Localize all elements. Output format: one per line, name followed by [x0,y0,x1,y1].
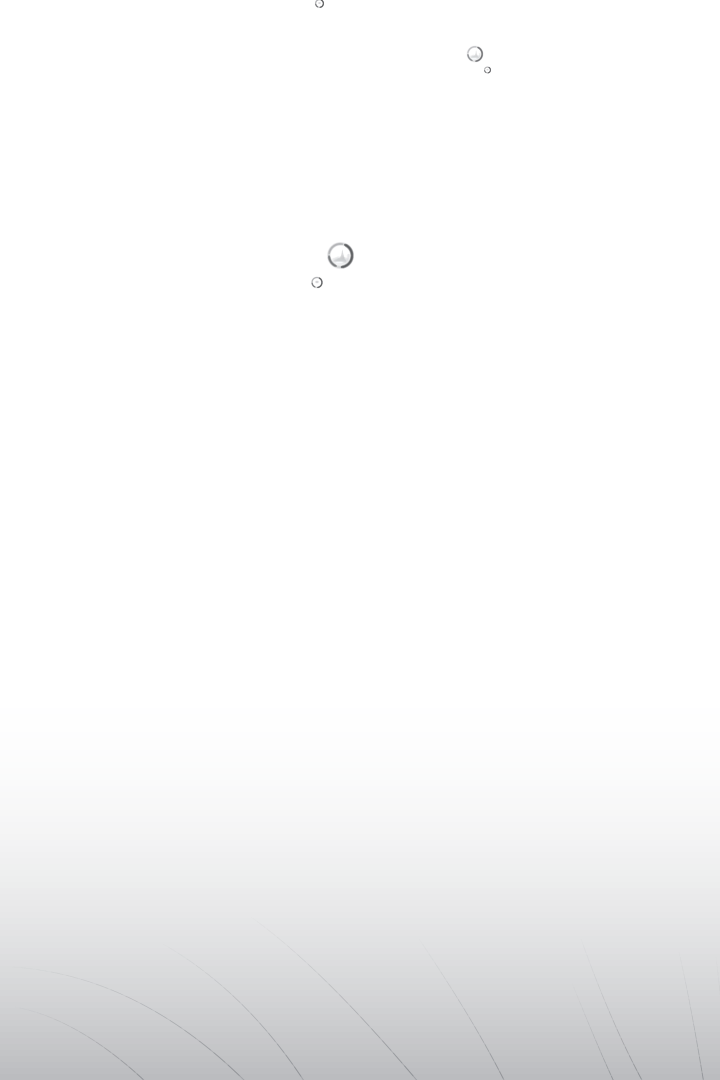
button[interactable]: Photo, air bubbles rising over reeds. Ta… [0,0,720,1080]
